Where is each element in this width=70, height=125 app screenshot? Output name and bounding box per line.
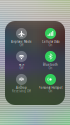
button[interactable]: Wi-Fi [7, 49, 36, 72]
staticText: On [48, 66, 52, 70]
staticText: Cellular Data [42, 40, 59, 43]
button[interactable]: Personal Hotspot [36, 72, 65, 95]
staticText: Personal Hotspot [38, 86, 62, 89]
staticText: On [48, 43, 52, 47]
staticText: Receiving Off [12, 89, 31, 93]
staticText: Bluetooth [43, 63, 58, 66]
staticText: On [48, 89, 52, 93]
staticText: Wi-Fi [18, 63, 24, 66]
button[interactable]: AirDrop [7, 72, 36, 95]
staticText: Airplane Mode [11, 40, 32, 43]
staticText: Off [19, 43, 23, 47]
button[interactable]: Cellular Data [36, 26, 65, 49]
button[interactable]: Airplane Mode [7, 26, 36, 49]
staticText: AirDrop [16, 86, 27, 89]
button[interactable]: Bluetooth [36, 49, 65, 72]
staticText: Off [19, 66, 23, 70]
